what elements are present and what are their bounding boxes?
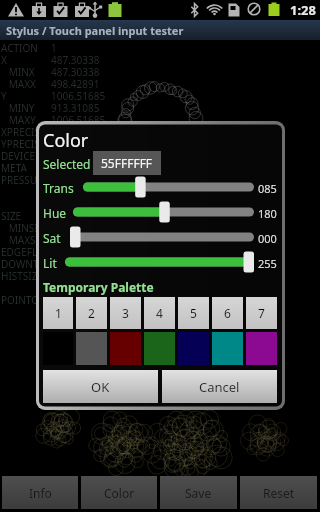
staticText: Color [43, 128, 89, 153]
staticText: MAXHIST [1, 281, 51, 293]
button[interactable]: Hue [67, 201, 260, 223]
staticText: ACTION [1, 41, 51, 53]
staticText: Color [104, 485, 135, 501]
staticText: 1 [51, 293, 57, 305]
staticText: 1.00391568 [51, 197, 106, 209]
button[interactable]: Lit [59, 251, 260, 273]
staticText: POINTCNT [1, 293, 51, 305]
staticText: Selected [43, 156, 91, 172]
staticText: 255 [258, 256, 280, 271]
button[interactable]: Color [81, 476, 157, 509]
button[interactable]: OK [43, 370, 158, 403]
staticText: Trans [43, 180, 74, 196]
staticText: Hue [43, 205, 67, 221]
staticText: MAXSIZE [1, 233, 51, 245]
staticText: Y [1, 89, 51, 101]
staticText: MINY [1, 101, 51, 113]
staticText: Temporary Palette [43, 279, 154, 295]
staticText: 4 [156, 305, 163, 321]
staticText: 1 [51, 41, 57, 53]
button[interactable]: 2 [76, 297, 107, 329]
button[interactable]: Info [2, 476, 78, 509]
staticText: 0 [51, 161, 57, 173]
staticText: MAXPRES [1, 197, 51, 209]
staticText: 000 [258, 231, 280, 246]
staticText: 6 [224, 305, 231, 321]
button[interactable]: 55FFFFFF [93, 151, 161, 175]
button[interactable]: Cancel [162, 370, 277, 403]
staticText: MAXX [1, 77, 51, 89]
staticText: X [1, 53, 51, 65]
staticText: 2 [88, 305, 95, 321]
staticText: MINX [1, 65, 51, 77]
staticText: MINPRES [1, 185, 51, 197]
staticText: 0.0 [51, 233, 66, 245]
staticText: 1006.51685 [51, 89, 106, 101]
staticText: Save [185, 485, 212, 501]
staticText: 487.30338 [51, 65, 100, 77]
button[interactable]: 7 [246, 297, 277, 329]
staticText: 487.30338 [51, 53, 100, 65]
staticText: Cancel [199, 378, 240, 396]
staticText: Reset [263, 485, 295, 501]
button[interactable]: Reset [240, 476, 317, 509]
staticText: 1.00391568 [51, 185, 106, 197]
button[interactable]: Save [160, 476, 237, 509]
staticText: 55FFFFFF [101, 155, 153, 171]
staticText: MINSIZE [1, 221, 51, 233]
staticText: SIZE [1, 209, 51, 221]
staticText: MAXY [1, 113, 51, 125]
staticText: 3 [51, 281, 57, 293]
button[interactable]: 5 [178, 297, 209, 329]
staticText: EDGEFLAGS [1, 245, 51, 257]
button[interactable]: 6 [212, 297, 243, 329]
staticText: XPRECIS [1, 125, 51, 137]
staticText: 3 [122, 305, 129, 321]
staticText: 8.9 [51, 125, 66, 137]
staticText: META [1, 161, 51, 173]
staticText: DEVICEID [1, 149, 51, 161]
staticText: OK [91, 378, 110, 396]
staticText: 498.42891 [51, 77, 100, 89]
button[interactable]: 1 [43, 297, 73, 329]
staticText: Info [29, 485, 52, 501]
staticText: DOWNTIME [1, 257, 51, 269]
button[interactable]: 4 [144, 297, 175, 329]
staticText: Stylus / Touch panel input tester [6, 23, 184, 38]
staticText: Sat [43, 230, 61, 246]
staticText: 085 [258, 181, 280, 196]
staticText: PRESSURE [1, 173, 51, 185]
staticText: 180 [258, 206, 280, 221]
staticText: 1006.51685 [51, 113, 106, 125]
staticText: 7 [258, 305, 265, 321]
staticText: 1123 [51, 257, 74, 269]
button[interactable]: Sat [64, 226, 260, 248]
staticText: YPRECIS [1, 137, 51, 149]
staticText: 5 [190, 305, 197, 321]
button[interactable]: Trans [77, 176, 260, 198]
button[interactable]: 3 [110, 297, 141, 329]
staticText: 0.0 [51, 209, 66, 221]
staticText: HISTSIZE [1, 269, 51, 281]
staticText: 913.31085 [51, 101, 100, 113]
staticText: 8.9 [51, 137, 66, 149]
staticText: 1:28 [290, 1, 316, 19]
staticText: Lit [43, 255, 57, 271]
staticText: 1 [55, 305, 62, 321]
